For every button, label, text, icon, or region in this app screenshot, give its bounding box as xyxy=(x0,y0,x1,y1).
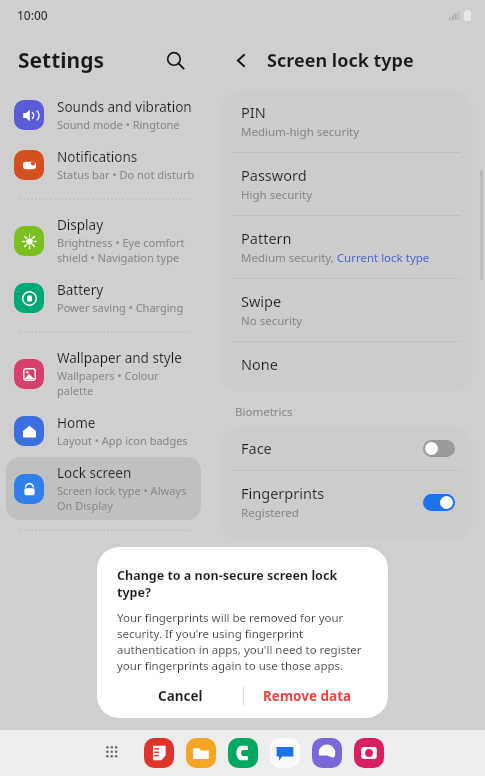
staticText: Pattern xyxy=(241,228,292,248)
staticText: Remove data xyxy=(263,687,352,705)
staticText: High security xyxy=(241,187,313,203)
button[interactable]: Pattern xyxy=(219,216,473,278)
staticText: Display xyxy=(57,216,104,234)
button[interactable]: Back xyxy=(223,42,259,78)
button[interactable]: Home xyxy=(6,407,201,455)
button[interactable]: Internet xyxy=(312,738,342,768)
button[interactable]: Apps xyxy=(96,736,130,770)
staticText: Swipe xyxy=(241,291,282,311)
button[interactable]: Wallpaper and style xyxy=(6,342,201,405)
staticText: No security xyxy=(241,313,303,329)
staticText: Layout • App icon badges xyxy=(57,433,188,448)
button[interactable]: None xyxy=(219,342,473,386)
staticText: Sound mode • Ringtone xyxy=(57,117,180,132)
staticText: Medium-high security xyxy=(241,124,360,140)
staticText: Your fingerprints will be removed for yo… xyxy=(117,610,370,674)
button[interactable]: PIN xyxy=(219,90,473,152)
button[interactable]: Password xyxy=(219,153,473,215)
button[interactable]: Notes xyxy=(144,738,174,768)
button[interactable]: Swipe xyxy=(219,279,473,341)
button[interactable]: Sounds and vibration xyxy=(6,91,201,139)
staticText: Registered xyxy=(241,505,299,521)
staticText: Brightness • Eye comfort shield • Naviga… xyxy=(57,235,195,265)
staticText: PIN xyxy=(241,102,266,122)
staticText: Fingerprints xyxy=(241,483,325,503)
staticText: Face xyxy=(241,438,272,458)
staticText: Medium security, Current lock type xyxy=(241,250,430,266)
staticText: Battery xyxy=(57,281,104,299)
button[interactable]: Lock screen xyxy=(6,457,201,520)
staticText: Screen lock type • Always On Display xyxy=(57,483,195,513)
staticText: Screen lock type xyxy=(267,48,414,73)
staticText: None xyxy=(241,354,278,374)
staticText: Biometrics xyxy=(235,404,293,420)
staticText: Home xyxy=(57,414,96,432)
button[interactable]: Messages xyxy=(270,738,300,768)
staticText: Wallpapers • Colour palette xyxy=(57,368,195,398)
button[interactable]: My Files xyxy=(186,738,216,768)
button[interactable]: Face xyxy=(219,426,473,470)
button[interactable]: Fingerprints xyxy=(219,471,473,533)
staticText: Status bar • Do not disturb xyxy=(57,167,195,182)
staticText: Sounds and vibration xyxy=(57,98,192,116)
staticText: Notifications xyxy=(57,148,138,166)
button[interactable]: Cancel xyxy=(117,674,243,718)
staticText: Power saving • Charging xyxy=(57,300,184,315)
button[interactable]: Battery xyxy=(6,274,201,322)
staticText: Cancel xyxy=(158,687,203,705)
button[interactable]: Search xyxy=(155,40,195,80)
staticText: Password xyxy=(241,165,307,185)
staticText: Change to a non-secure screen lock type? xyxy=(117,567,370,601)
button[interactable]: Display xyxy=(6,209,201,272)
staticText: 10:00 xyxy=(17,7,48,23)
button[interactable]: Phone xyxy=(228,738,258,768)
staticText: Lock screen xyxy=(57,464,132,482)
button[interactable]: Notifications xyxy=(6,141,201,189)
staticText: Wallpaper and style xyxy=(57,349,182,367)
button[interactable]: Camera xyxy=(354,738,384,768)
staticText: Settings xyxy=(18,46,105,75)
button[interactable]: Remove data xyxy=(244,674,370,718)
